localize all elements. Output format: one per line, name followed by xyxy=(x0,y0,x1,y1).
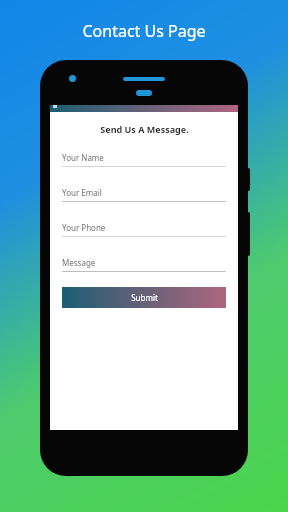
staticText: Message xyxy=(62,257,96,268)
staticText: Send Us A Message. xyxy=(100,123,189,135)
staticText: Contact Us Page xyxy=(82,20,206,42)
button[interactable]: Submit xyxy=(62,287,226,308)
staticText: Your Email xyxy=(62,187,102,198)
button[interactable]: Your Phone xyxy=(62,222,226,237)
staticText: Your Phone xyxy=(62,222,106,233)
button[interactable]: Your Name xyxy=(62,152,226,167)
button[interactable]: Your Email xyxy=(62,187,226,202)
button[interactable]: Message xyxy=(62,257,226,272)
staticText: Submit xyxy=(131,292,158,303)
staticText: Your Name xyxy=(62,152,104,163)
